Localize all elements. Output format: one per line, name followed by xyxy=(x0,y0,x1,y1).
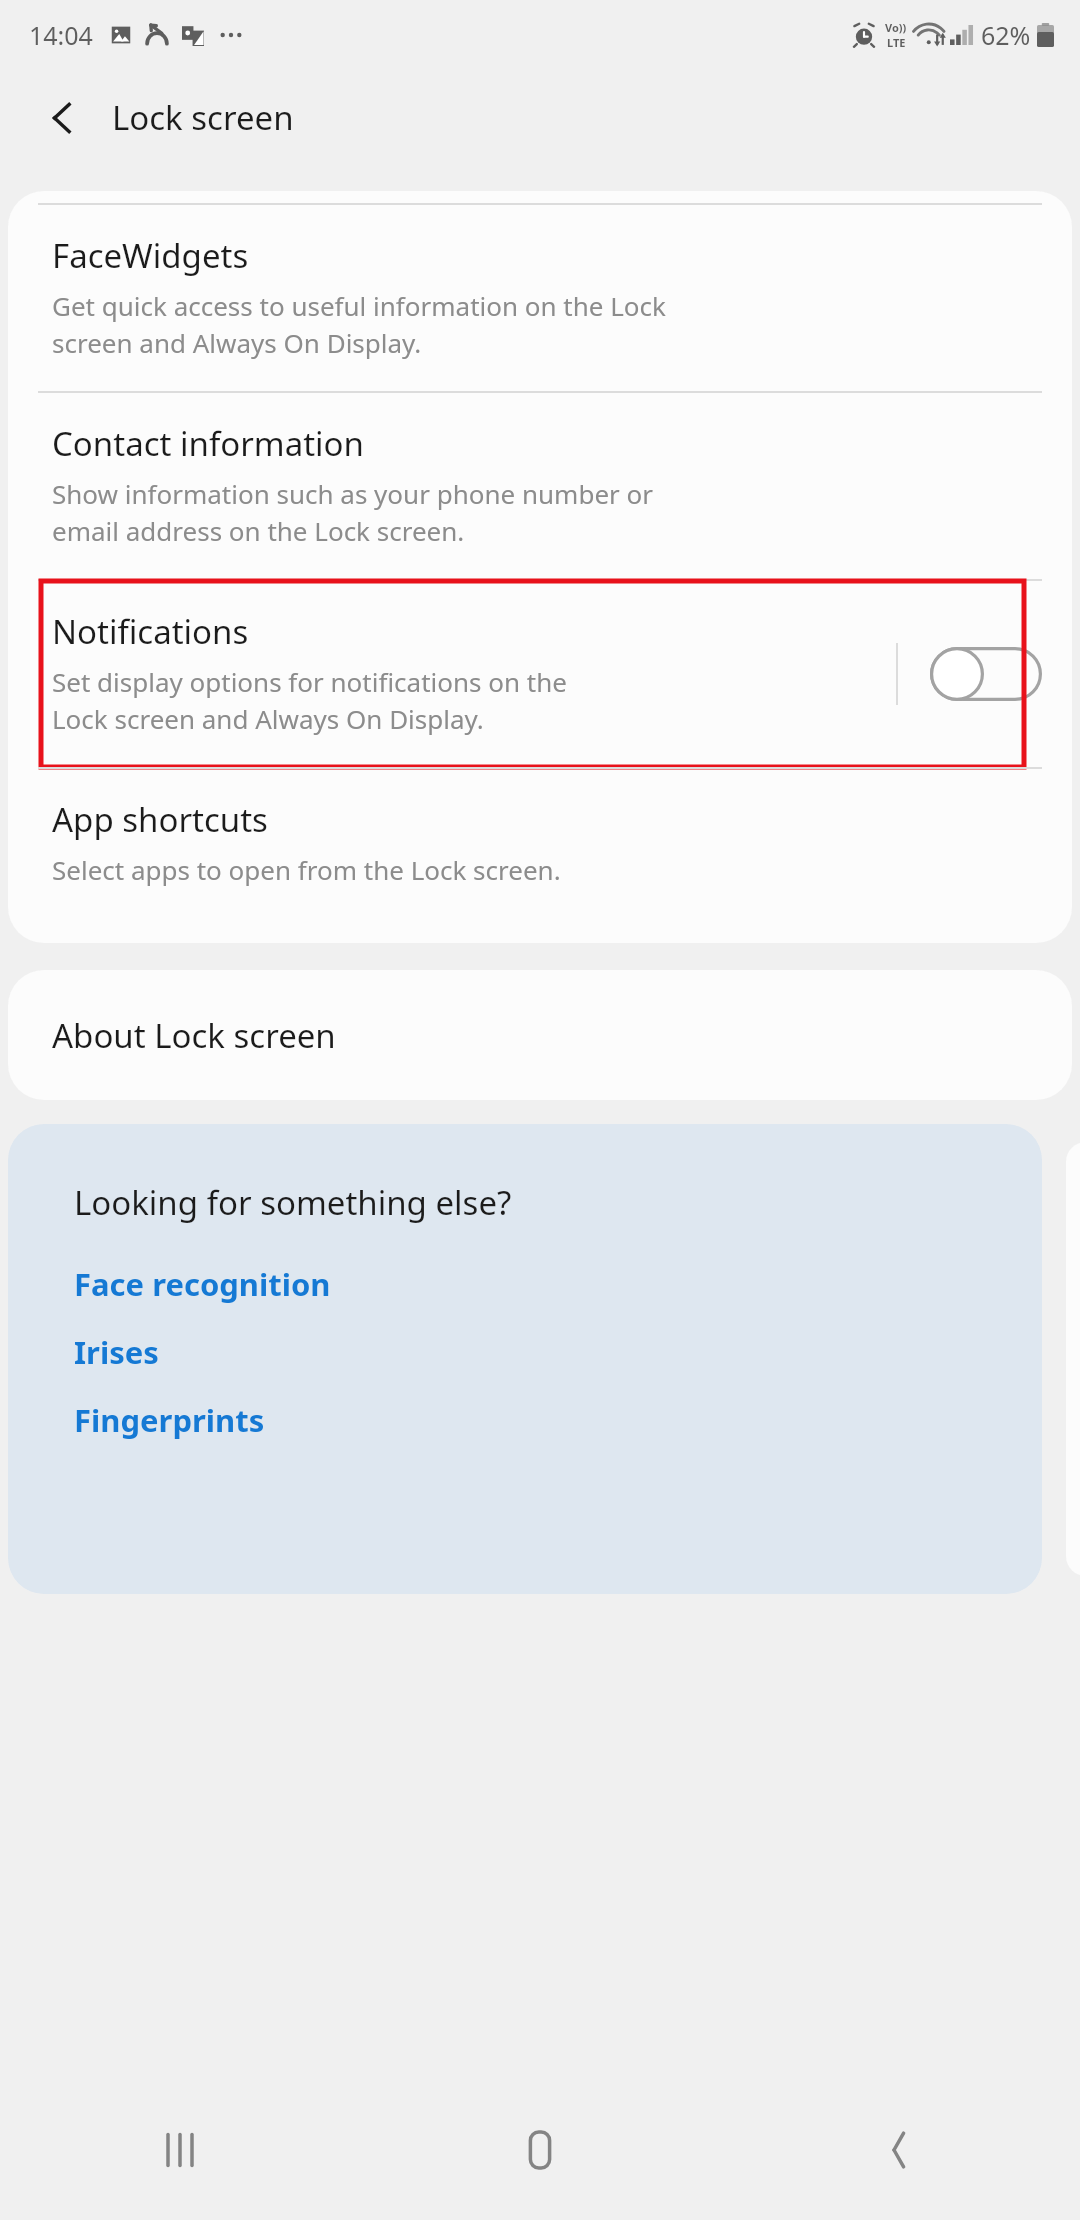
button[interactable]: Back xyxy=(720,2080,1080,2220)
staticText: Irises xyxy=(74,1331,159,1373)
button[interactable]: About Lock screen xyxy=(8,970,1072,1100)
staticText: Select apps to open from the Lock screen… xyxy=(52,852,561,887)
staticText: FaceWidgets xyxy=(52,233,249,278)
staticText: LTE xyxy=(887,35,906,50)
button[interactable]: App shortcuts xyxy=(8,769,1072,917)
staticText: Get quick access to useful information o… xyxy=(52,288,666,361)
button[interactable]: Irises xyxy=(74,1331,159,1373)
staticText: Contact information xyxy=(52,421,364,466)
staticText: Looking for something else? xyxy=(74,1180,512,1225)
staticText: Set display options for notifications on… xyxy=(52,664,567,737)
button[interactable]: Recents xyxy=(0,2080,360,2220)
staticText: Show information such as your phone numb… xyxy=(52,476,654,549)
staticText: Face recognition xyxy=(74,1263,331,1305)
button[interactable]: Contact information xyxy=(8,393,1072,579)
button[interactable]: FaceWidgets xyxy=(8,205,1072,391)
button[interactable]: Notifications toggle, off xyxy=(930,647,1042,701)
button[interactable]: Fingerprints xyxy=(74,1399,265,1441)
staticText: 14:04 xyxy=(29,18,93,52)
staticText: Lock screen xyxy=(112,95,294,140)
button[interactable]: Back xyxy=(32,87,94,149)
staticText: Notifications xyxy=(52,609,249,654)
button[interactable]: Home xyxy=(360,2080,720,2220)
staticText: Vo)) xyxy=(885,20,907,35)
staticText: App shortcuts xyxy=(52,797,268,842)
staticText: Fingerprints xyxy=(74,1399,265,1441)
button[interactable]: Notifications xyxy=(8,581,1072,767)
staticText: 62% xyxy=(981,18,1031,52)
staticText: About Lock screen xyxy=(52,1013,336,1058)
button[interactable]: Face recognition xyxy=(74,1263,331,1305)
